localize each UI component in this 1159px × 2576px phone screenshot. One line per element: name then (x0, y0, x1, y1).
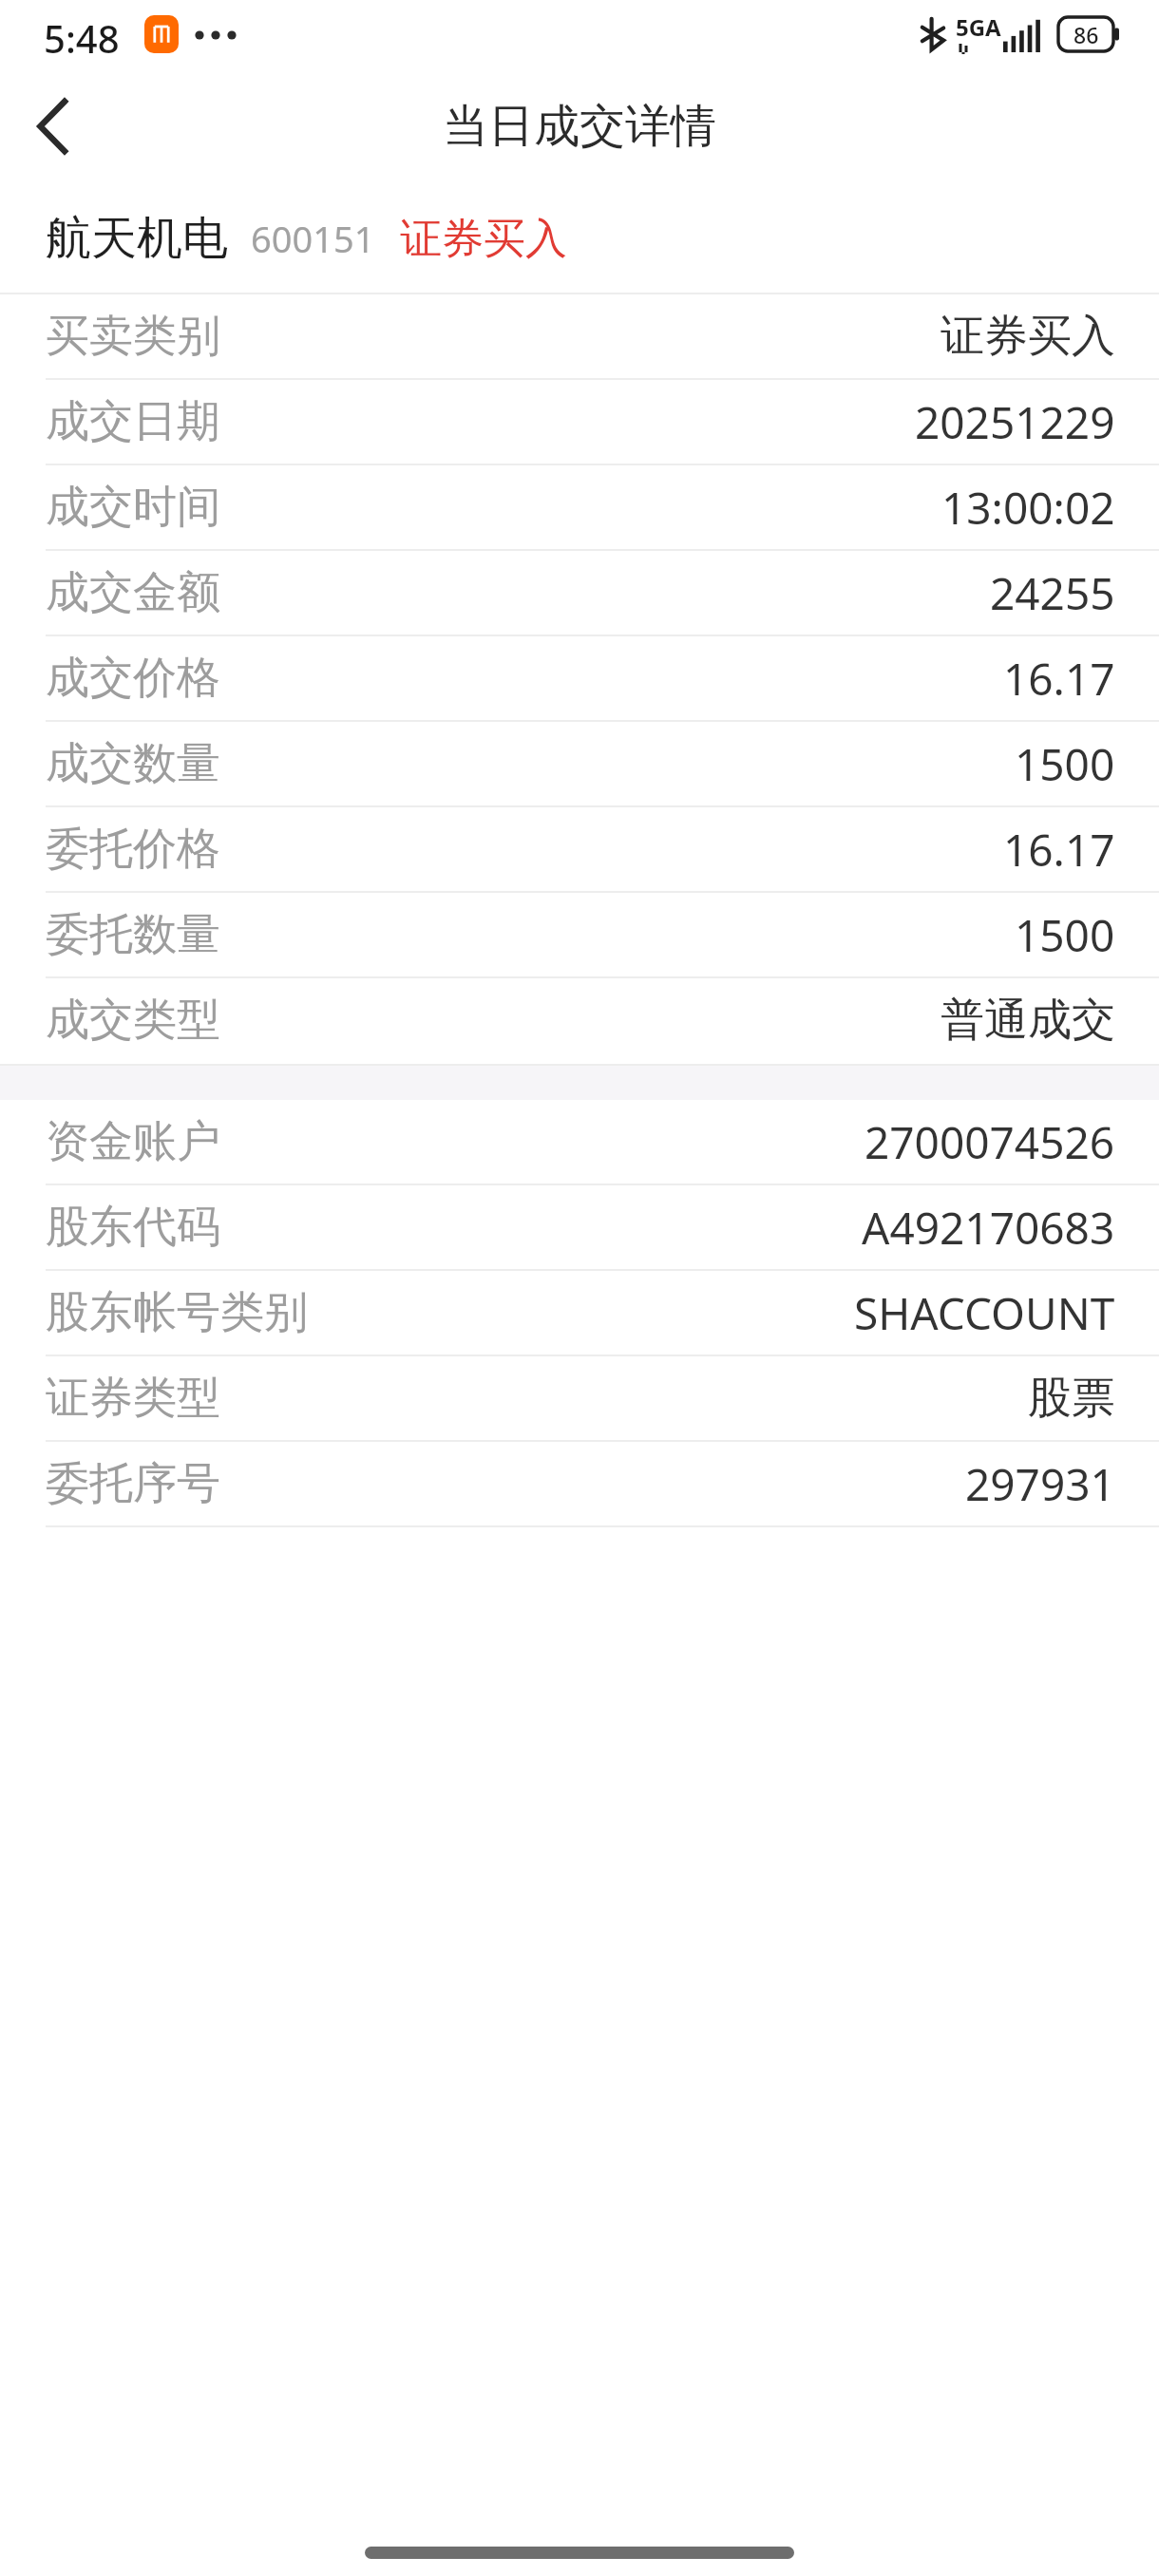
staticText: 1500 (1015, 734, 1115, 794)
staticText: SHACCOUNT (854, 1283, 1115, 1343)
button[interactable]: 成交数量 (0, 722, 1159, 807)
staticText: 成交类型 (46, 993, 220, 1048)
staticText: 证券买入 (400, 213, 567, 265)
button[interactable]: 委托数量 (0, 893, 1159, 978)
staticText: 600151 (251, 214, 375, 263)
staticText: A492170683 (862, 1198, 1115, 1258)
button[interactable]: 股东帐号类别 (0, 1271, 1159, 1356)
staticText: 1500 (1015, 905, 1115, 965)
staticText: 297931 (965, 1454, 1115, 1514)
staticText: 20251229 (915, 392, 1115, 452)
staticText: 13:00:02 (941, 478, 1115, 538)
staticText: 委托数量 (46, 907, 220, 962)
staticText: 24255 (990, 563, 1115, 623)
button[interactable]: 返回 (0, 73, 106, 180)
staticText: 委托价格 (46, 822, 220, 877)
button[interactable]: 成交日期 (0, 380, 1159, 465)
staticText: 股东代码 (46, 1200, 220, 1255)
staticText: 资金账户 (46, 1114, 220, 1169)
staticText: 委托序号 (46, 1456, 220, 1511)
staticText: 当日成交详情 (443, 98, 716, 155)
staticText: 16.17 (1003, 820, 1115, 880)
staticText: 航天机电 (46, 210, 228, 267)
button[interactable]: 成交类型 (0, 978, 1159, 1064)
button[interactable]: 成交时间 (0, 465, 1159, 551)
staticText: 成交日期 (46, 394, 220, 449)
staticText: 普通成交 (940, 993, 1115, 1048)
staticText: 成交金额 (46, 565, 220, 620)
staticText: 成交价格 (46, 651, 220, 706)
button[interactable]: 航天机电 (0, 184, 1159, 293)
staticText: 证券类型 (46, 1371, 220, 1426)
button[interactable]: 资金账户 (0, 1100, 1159, 1185)
staticText: 2700074526 (864, 1112, 1115, 1172)
staticText: 股东帐号类别 (46, 1285, 308, 1340)
button[interactable]: 委托价格 (0, 807, 1159, 893)
staticText: 买卖类别 (46, 309, 220, 364)
staticText: 股票 (1028, 1371, 1115, 1426)
staticText: 16.17 (1003, 649, 1115, 709)
button[interactable]: 证券类型 (0, 1356, 1159, 1442)
staticText: 成交时间 (46, 480, 220, 535)
staticText: 5:48 (44, 12, 120, 64)
staticText: 成交数量 (46, 736, 220, 791)
button[interactable]: 股东代码 (0, 1185, 1159, 1271)
staticText: 证券买入 (940, 309, 1115, 364)
button[interactable]: 买卖类别 (0, 294, 1159, 380)
staticText: 5GA (956, 11, 1001, 43)
staticText: 86 (1073, 20, 1099, 49)
button[interactable]: 成交金额 (0, 551, 1159, 636)
button[interactable]: 成交价格 (0, 636, 1159, 722)
button[interactable]: 委托序号 (0, 1442, 1159, 1527)
